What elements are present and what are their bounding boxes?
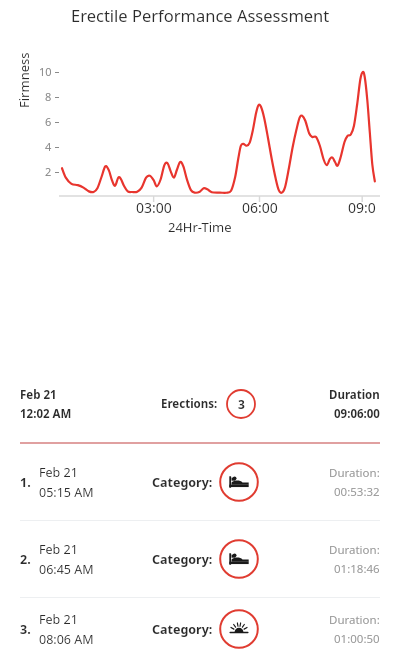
staticText: 05:15 AM: [39, 484, 94, 501]
staticText: Erectile Performance Assessment: [71, 4, 330, 26]
staticText: 3: [238, 396, 245, 412]
staticText: Firmness: [15, 52, 33, 108]
staticText: 6: [45, 114, 52, 129]
staticText: 09:06:00: [334, 406, 380, 422]
staticText: 4: [45, 139, 52, 154]
other: Sleep category: [219, 462, 259, 502]
staticText: 2.: [20, 551, 31, 568]
staticText: Category:: [152, 474, 213, 491]
staticText: 3.: [20, 621, 31, 638]
button[interactable]: 1.: [0, 444, 400, 520]
staticText: 00:53:32: [334, 484, 380, 500]
staticText: 06:00: [242, 198, 278, 217]
staticText: 24Hr-Time: [168, 218, 232, 236]
staticText: 12:02 AM: [20, 406, 72, 422]
staticText: 10: [39, 64, 52, 79]
staticText: Erections:: [161, 396, 218, 412]
button[interactable]: 2.: [0, 521, 400, 597]
other: Sleep category: [219, 539, 259, 579]
staticText: Feb 21: [20, 387, 57, 403]
button[interactable]: 3.: [0, 598, 400, 660]
staticText: 09:0: [348, 198, 376, 217]
staticText: Category:: [152, 621, 213, 638]
staticText: Feb 21: [39, 464, 78, 481]
button[interactable]: Feb 21: [0, 378, 400, 430]
staticText: Feb 21: [39, 611, 78, 628]
staticText: Duration:: [329, 542, 380, 558]
staticText: 03:00: [136, 198, 172, 217]
staticText: 08:06 AM: [39, 631, 94, 648]
staticText: Duration: [329, 387, 380, 403]
staticText: Category:: [152, 551, 213, 568]
staticText: Duration:: [329, 612, 380, 628]
staticText: 01:18:46: [334, 561, 380, 577]
staticText: 8: [45, 89, 52, 104]
staticText: 2: [45, 164, 52, 179]
staticText: 1.: [20, 474, 31, 491]
staticText: Duration:: [329, 465, 380, 481]
staticText: Feb 21: [39, 541, 78, 558]
staticText: 06:45 AM: [39, 561, 94, 578]
staticText: 01:00:50: [334, 631, 380, 647]
other: Morning category: [219, 609, 259, 649]
